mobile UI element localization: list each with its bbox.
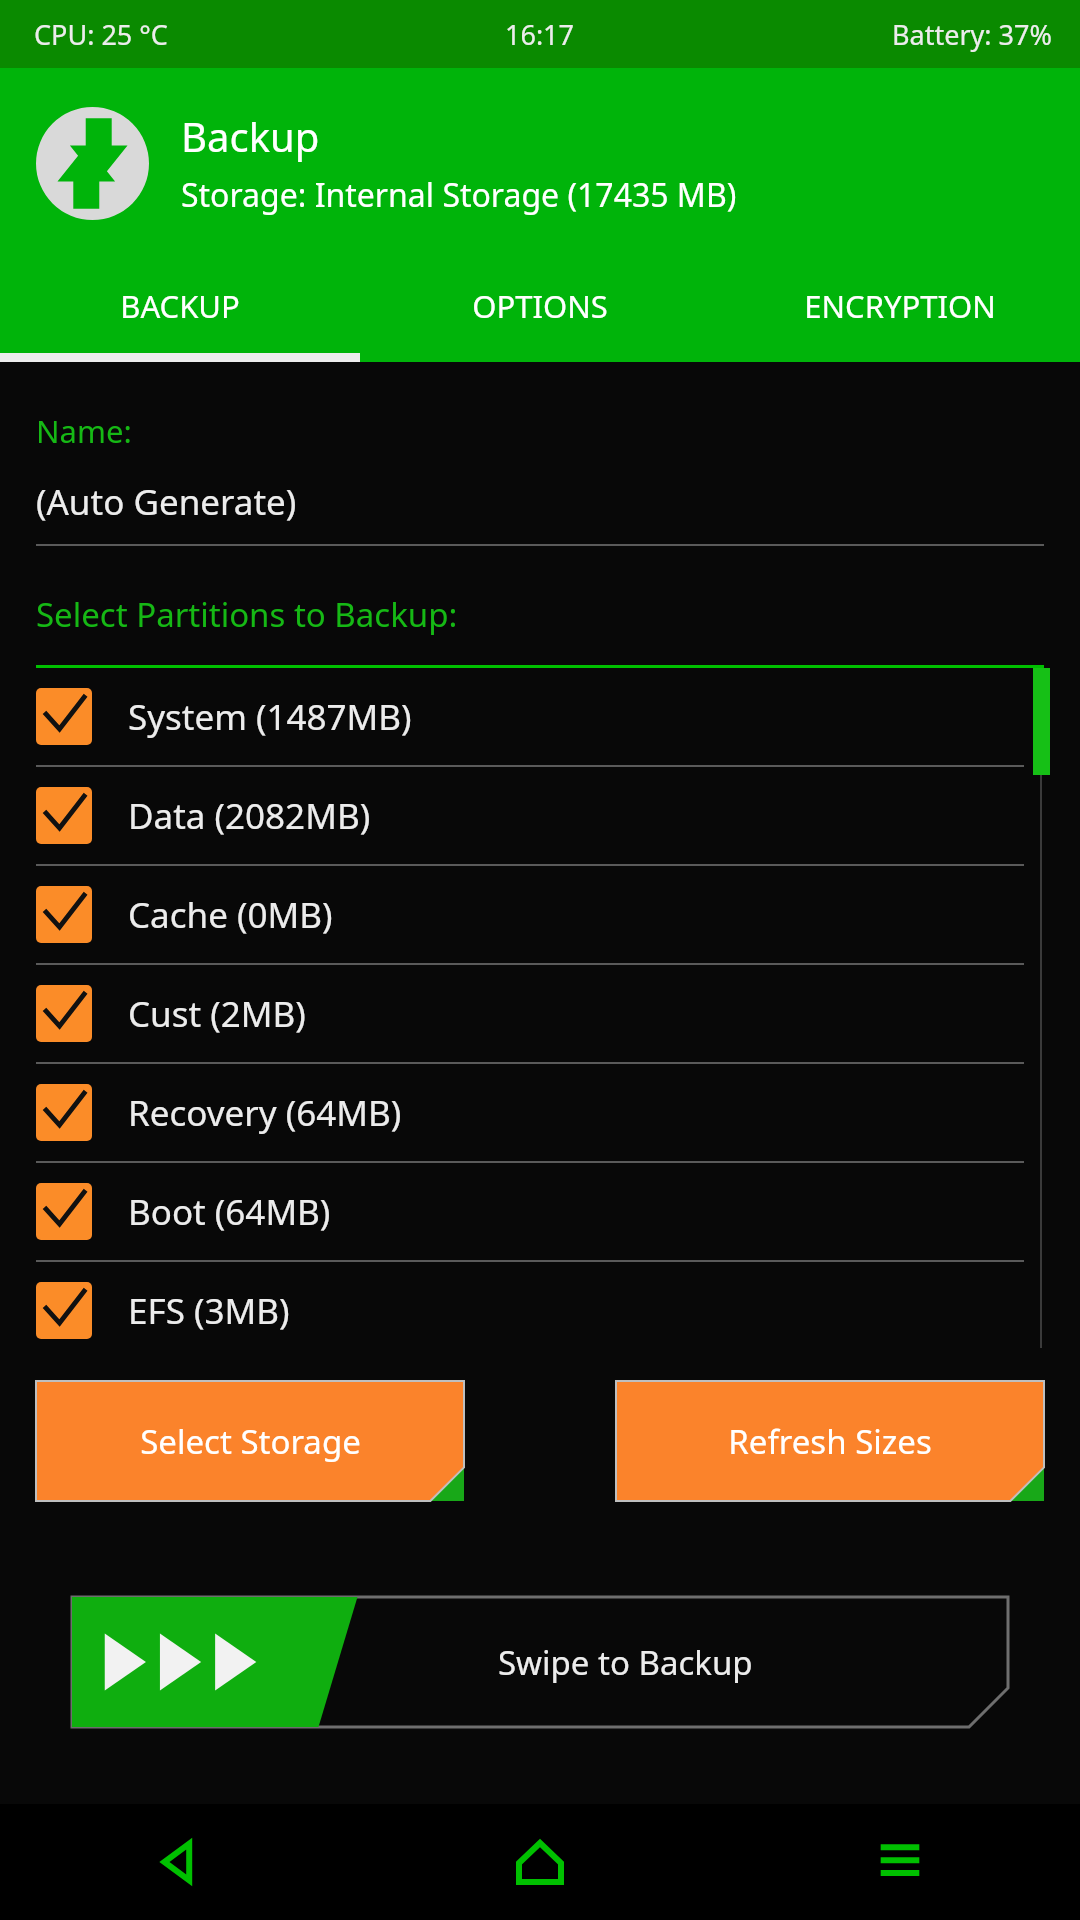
button[interactable]: Home [360,1804,720,1920]
staticText: OPTIONS [472,285,608,327]
staticText: Refresh Sizes [728,1419,932,1464]
button[interactable]: Data (2082MB) [0,767,1080,864]
staticText: Swipe to Backup [498,1640,753,1685]
button[interactable]: Boot (64MB) [0,1163,1080,1260]
button[interactable]: Select Storage [36,1381,464,1501]
button[interactable]: OPTIONS [360,258,720,353]
staticText: Select Partitions to Backup: [36,592,458,637]
button[interactable]: System (1487MB) [0,668,1080,765]
button[interactable]: Swipe to Backup [72,1597,1008,1727]
staticText: Boot (64MB) [128,1188,331,1236]
staticText: CPU: 25 °C [34,16,168,53]
staticText: Battery: 37% [892,16,1052,53]
staticText: Cust (2MB) [128,990,306,1038]
staticText: System (1487MB) [128,693,412,741]
button[interactable]: Cache (0MB) [0,866,1080,963]
button[interactable]: EFS (3MB) [0,1262,1080,1359]
button[interactable]: ENCRYPTION [720,258,1080,353]
staticText: EFS (3MB) [128,1287,290,1335]
staticText: Data (2082MB) [128,792,371,840]
staticText: Cache (0MB) [128,891,333,939]
staticText: Backup [181,109,320,163]
button[interactable]: Recovery (64MB) [0,1064,1080,1161]
staticText: Name: [36,410,132,452]
button[interactable]: (Auto Generate) [0,478,1080,546]
staticText: BACKUP [120,285,240,327]
staticText: Storage: Internal Storage (17435 MB) [181,173,737,217]
staticText: (Auto Generate) [36,478,297,526]
button[interactable]: BACKUP [0,258,360,353]
staticText: ENCRYPTION [804,285,996,327]
staticText: 16:17 [505,16,575,53]
button[interactable]: Cust (2MB) [0,965,1080,1062]
button[interactable]: Back [0,1804,360,1920]
button[interactable]: Refresh Sizes [616,1381,1044,1501]
staticText: Recovery (64MB) [128,1089,402,1137]
staticText: Select Storage [140,1419,361,1464]
button[interactable]: Menu [720,1804,1080,1920]
